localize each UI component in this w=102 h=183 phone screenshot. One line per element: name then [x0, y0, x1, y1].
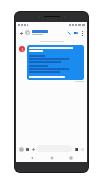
button[interactable]: Video call	[72, 29, 79, 36]
button[interactable]: More options	[79, 30, 85, 36]
button[interactable]: More	[79, 146, 85, 152]
button[interactable]	[27, 45, 84, 80]
button[interactable]: Attach	[30, 146, 36, 152]
button[interactable]	[25, 27, 65, 38]
button[interactable]: Back	[29, 155, 35, 161]
button[interactable]: Gallery	[18, 146, 24, 152]
button[interactable]: Home	[49, 155, 55, 161]
button[interactable]: Call	[65, 29, 72, 36]
button[interactable]: Recent apps	[68, 155, 74, 161]
button[interactable]: Back	[18, 30, 24, 36]
button[interactable]: Stickers	[24, 146, 30, 152]
button[interactable]: Send	[73, 146, 79, 152]
